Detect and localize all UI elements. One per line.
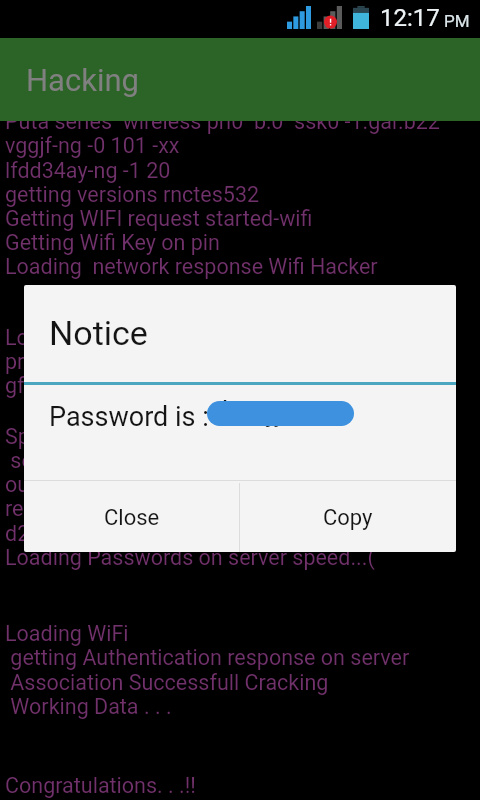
staticText: Puta series wireless pri0 b:0 ssk0 -1.ga…: [5, 109, 440, 134]
staticText: Loading response list 0x23: [5, 325, 262, 350]
staticText: Getting Wifi Key on pin: [5, 230, 220, 255]
staticText: d2fk34 processing keys: [5, 521, 232, 546]
staticText: 12:17: [380, 4, 440, 32]
staticText: Close: [104, 505, 160, 531]
staticText: dtrwjy5ex9: [213, 396, 345, 428]
staticText: Notice: [49, 313, 148, 353]
staticText: lfdd34ay-ng -1 20: [5, 158, 171, 183]
staticText: sending request to server: [5, 448, 253, 473]
staticText: Association Successfull Cracking: [5, 670, 329, 695]
other: Mobile signal: [287, 6, 311, 29]
staticText: Congratulations. . .!!: [5, 773, 196, 798]
staticText: Speed checking 300k: [5, 424, 209, 449]
other: Battery: [353, 6, 369, 29]
staticText: Hacking: [26, 62, 139, 98]
staticText: Getting WIFI request started-wifi: [5, 206, 313, 231]
staticText: re-sending key request: [5, 496, 220, 521]
staticText: Loading network response Wifi Hacker: [5, 254, 378, 279]
staticText: getting versions rnctes532: [5, 182, 260, 207]
button[interactable]: Copy: [240, 483, 456, 552]
other: No SIM signal: [317, 6, 342, 29]
staticText: PM: [444, 11, 470, 31]
staticText: Loading Passwords on server speed...(: [5, 545, 375, 570]
staticText: Copy: [323, 505, 373, 531]
staticText: processing key bruteforce: [5, 349, 253, 374]
staticText: Working Data . . .: [5, 694, 172, 719]
button[interactable]: Close: [24, 483, 239, 552]
staticText: gfdk34-ng 443 open port: [5, 373, 241, 398]
staticText: getting Authentication response on serve…: [5, 645, 410, 670]
staticText: out of range response: [5, 472, 215, 497]
staticText: Loading WiFi: [5, 621, 129, 646]
staticText: vggjf-ng -0 101 -xx: [5, 133, 180, 158]
staticText: Password is :: [49, 401, 209, 433]
